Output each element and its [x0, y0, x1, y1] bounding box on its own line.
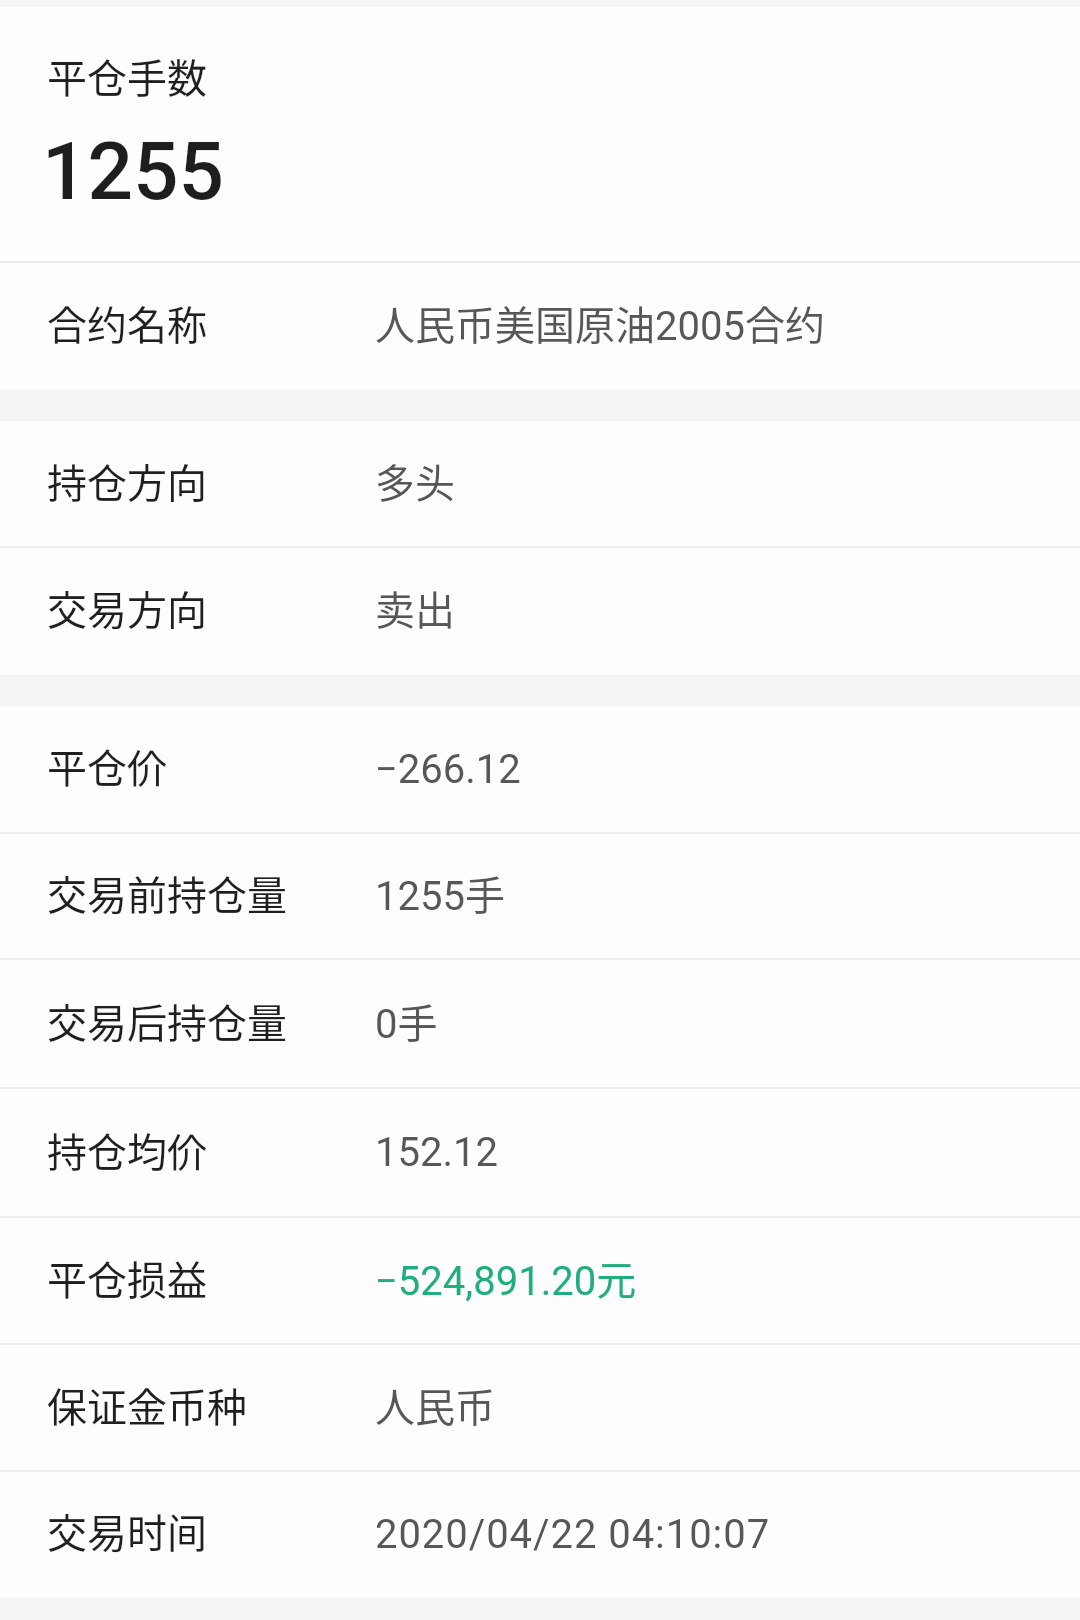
button[interactable]: 交易时间 — [0, 1472, 1080, 1598]
staticText: 平仓损益 — [47, 1249, 207, 1307]
button[interactable]: 保证金币种 — [0, 1345, 1080, 1472]
button[interactable]: 合约名称 — [0, 263, 1080, 390]
button[interactable]: 持仓方向 — [0, 421, 1080, 548]
staticText: 平仓手数 — [47, 47, 207, 105]
staticText: 2020/04/22 04:10:07 — [375, 1511, 771, 1558]
staticText: 人民币 — [375, 1376, 495, 1434]
staticText: 卖出 — [375, 579, 455, 637]
staticText: −524,891.20元 — [375, 1249, 637, 1307]
button[interactable]: 交易前持仓量 — [0, 834, 1080, 960]
button[interactable]: 持仓均价 — [0, 1089, 1080, 1218]
button[interactable]: 平仓损益 — [0, 1218, 1080, 1345]
staticText: 交易时间 — [47, 1502, 207, 1560]
button[interactable]: 交易方向 — [0, 548, 1080, 675]
staticText: 合约名称 — [47, 294, 207, 352]
staticText: 持仓均价 — [47, 1121, 207, 1179]
staticText: 152.12 — [375, 1129, 498, 1176]
staticText: 人民币美国原油2005合约 — [375, 294, 825, 352]
staticText: 交易前持仓量 — [47, 864, 287, 922]
staticText: 交易方向 — [47, 579, 207, 637]
staticText: 1255 — [42, 125, 224, 219]
button[interactable]: 平仓价 — [0, 706, 1080, 834]
staticText: 0手 — [375, 992, 438, 1050]
staticText: 1255手 — [375, 864, 505, 922]
staticText: 多头 — [375, 452, 455, 510]
staticText: 持仓方向 — [47, 452, 207, 510]
button[interactable]: 交易后持仓量 — [0, 960, 1080, 1089]
staticText: 交易后持仓量 — [47, 992, 287, 1050]
staticText: 保证金币种 — [47, 1376, 247, 1434]
staticText: −266.12 — [375, 746, 521, 793]
staticText: 平仓价 — [47, 737, 167, 795]
